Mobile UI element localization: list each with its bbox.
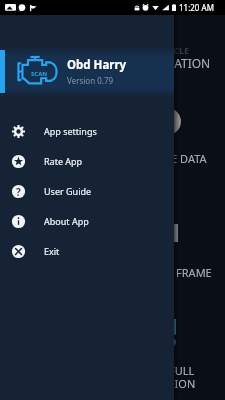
staticText: Obd Harry: [67, 57, 127, 73]
staticText: Rate App: [44, 155, 83, 167]
button[interactable]: Rate App: [0, 146, 174, 176]
staticText: 11:20 AM: [179, 2, 214, 13]
other: Rate App: [11, 154, 26, 169]
staticText: App settings: [44, 125, 97, 137]
staticText: FULL: [169, 363, 195, 378]
staticText: SCAN: [31, 70, 48, 78]
other: Exit: [11, 244, 26, 259]
button[interactable]: About App: [0, 206, 174, 236]
staticText: User Guide: [44, 185, 92, 197]
staticText: Exit: [44, 245, 60, 257]
staticText: VEHICLE: [152, 44, 190, 56]
staticText: Version 0.79: [67, 75, 114, 86]
other: About App: [11, 214, 26, 229]
staticText: INFORMATION: [127, 55, 211, 71]
other: User Guide: [11, 184, 26, 199]
staticText: LIVE DATA: [155, 151, 207, 166]
staticText: FREEZE FRAME: [136, 265, 212, 280]
staticText: ?: [16, 185, 21, 199]
button[interactable]: User Guide: [0, 176, 174, 206]
staticText: About App: [44, 215, 89, 227]
staticText: VERSION: [149, 376, 196, 391]
other: App settings: [11, 124, 26, 139]
button[interactable]: Exit: [0, 236, 174, 266]
button[interactable]: App settings: [0, 116, 174, 146]
